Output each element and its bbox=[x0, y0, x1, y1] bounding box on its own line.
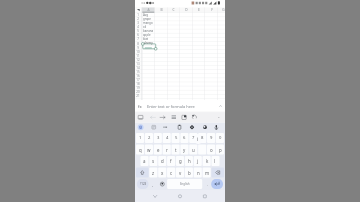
staticText: 2 bbox=[148, 135, 151, 141]
staticText: 14 bbox=[136, 66, 140, 70]
staticText: g bbox=[179, 158, 182, 164]
staticText: C bbox=[172, 8, 175, 12]
staticText: r bbox=[166, 147, 168, 153]
button[interactable]: Back bbox=[148, 112, 156, 120]
staticText: 1 bbox=[137, 13, 139, 17]
button[interactable]: Back bbox=[149, 190, 161, 202]
staticText: 7 bbox=[137, 37, 139, 41]
staticText: t bbox=[175, 147, 177, 153]
staticText: 15 bbox=[136, 70, 140, 74]
staticText: 20 bbox=[136, 90, 140, 94]
staticText: . bbox=[207, 182, 209, 187]
button[interactable]: Insert image bbox=[181, 112, 189, 120]
staticText: n bbox=[197, 170, 200, 176]
staticText: G bbox=[222, 8, 225, 12]
staticText: l bbox=[214, 158, 216, 164]
button[interactable]: Borders bbox=[170, 112, 178, 120]
staticText: 4 bbox=[137, 25, 139, 29]
staticText: 4 bbox=[166, 135, 169, 141]
staticText: s bbox=[152, 158, 155, 164]
staticText: 0 bbox=[219, 135, 222, 141]
staticText: f bbox=[170, 158, 172, 164]
staticText: grape bbox=[143, 17, 151, 21]
staticText: 13 bbox=[136, 62, 140, 66]
staticText: 6 bbox=[137, 33, 139, 37]
staticText: E bbox=[198, 8, 200, 12]
button[interactable]: More options bbox=[218, 113, 225, 120]
staticText: Avg bbox=[143, 13, 149, 17]
staticText: Enter text or formula here bbox=[147, 104, 195, 109]
staticText: kiwi bbox=[143, 37, 149, 41]
staticText: ?123 bbox=[140, 182, 147, 186]
staticText: 10 bbox=[136, 50, 140, 54]
staticText: a bbox=[143, 158, 146, 164]
staticText: F bbox=[211, 8, 213, 12]
staticText: English bbox=[180, 182, 190, 186]
staticText: fx bbox=[138, 104, 142, 109]
staticText: u bbox=[192, 147, 195, 153]
staticText: 8 bbox=[137, 42, 139, 46]
staticText: j bbox=[197, 158, 199, 164]
staticText: 21 bbox=[136, 94, 140, 98]
button[interactable]: Recents bbox=[199, 190, 211, 202]
staticText: B bbox=[160, 8, 163, 12]
staticText: y bbox=[183, 147, 186, 153]
staticText: m bbox=[205, 170, 210, 176]
staticText: banana bbox=[143, 29, 154, 33]
staticText: d bbox=[161, 158, 164, 164]
staticText: k bbox=[206, 158, 209, 164]
staticText: p bbox=[219, 147, 222, 153]
staticText: 11 bbox=[136, 54, 140, 58]
staticText: 9 bbox=[210, 135, 213, 141]
staticText: o bbox=[210, 147, 213, 153]
staticText: oil bbox=[143, 25, 147, 29]
staticText: 1 bbox=[139, 135, 142, 141]
staticText: i bbox=[197, 136, 199, 142]
staticText: A bbox=[147, 8, 150, 12]
staticText: h bbox=[188, 158, 191, 164]
staticText: 2 bbox=[137, 17, 139, 21]
staticText: x bbox=[161, 170, 164, 176]
staticText: apple bbox=[143, 33, 151, 37]
staticText: D bbox=[185, 8, 188, 12]
staticText: 9 bbox=[137, 46, 139, 50]
staticText: 19 bbox=[136, 86, 140, 90]
staticText: z bbox=[152, 170, 155, 176]
staticText: 5 bbox=[175, 135, 178, 141]
staticText: 8 bbox=[201, 135, 204, 141]
button[interactable]: Undo bbox=[191, 112, 199, 120]
staticText: 18 bbox=[136, 82, 140, 86]
staticText: , bbox=[152, 182, 154, 187]
staticText: v bbox=[179, 170, 182, 176]
staticText: 5 bbox=[137, 29, 139, 33]
staticText: 16 bbox=[136, 74, 140, 78]
staticText: w bbox=[147, 147, 151, 153]
button[interactable]: Enter text or formula here bbox=[135, 100, 225, 112]
button[interactable]: Home bbox=[174, 190, 186, 202]
staticText: 12 bbox=[136, 58, 140, 62]
staticText: b bbox=[188, 170, 191, 176]
staticText: 7 bbox=[192, 135, 195, 141]
staticText: q bbox=[139, 147, 142, 153]
staticText: e bbox=[157, 147, 160, 153]
staticText: 17 bbox=[136, 78, 140, 82]
staticText: 6 bbox=[183, 135, 186, 141]
staticText: 3 bbox=[157, 135, 160, 141]
staticText: cherry bbox=[144, 41, 153, 45]
button[interactable]: Forward bbox=[159, 112, 167, 120]
staticText: 3 bbox=[137, 21, 139, 25]
staticText: c bbox=[170, 170, 173, 176]
button[interactable]: Present bbox=[137, 112, 145, 120]
staticText: mango bbox=[143, 21, 153, 25]
